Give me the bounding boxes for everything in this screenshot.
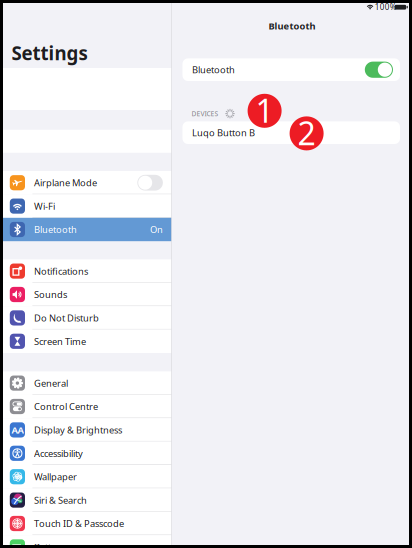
button[interactable]: Do Not Disturb: [0, 306, 172, 330]
button[interactable]: Bluetooth: [182, 58, 400, 81]
button[interactable]: Airplane Mode: [0, 171, 172, 194]
staticText: AA: [11, 424, 23, 436]
staticText: Wallpaper: [34, 470, 77, 483]
staticText: Control Centre: [34, 400, 98, 413]
staticText: Siri & Search: [34, 494, 87, 506]
staticText: Do Not Disturb: [34, 312, 99, 324]
button[interactable]: Luqo Button B: [182, 121, 400, 144]
staticText: General: [34, 377, 68, 389]
button[interactable]: Notifications: [0, 259, 172, 283]
staticText: Accessibility: [34, 447, 83, 459]
button[interactable]: Siri & Search: [0, 488, 172, 512]
staticText: Battery: [34, 541, 65, 548]
button[interactable]: Control Centre: [0, 395, 172, 418]
button[interactable]: Accessibility: [0, 442, 172, 465]
button[interactable]: Sounds: [0, 283, 172, 306]
staticText: Bluetooth: [268, 20, 315, 32]
staticText: 100%: [375, 1, 397, 12]
staticText: Bluetooth: [192, 63, 235, 76]
staticText: Luqo Button B: [192, 126, 255, 139]
staticText: Notifications: [34, 265, 88, 277]
staticText: Display & Brightness: [34, 424, 122, 436]
staticText: Sounds: [34, 288, 67, 301]
button[interactable]: AA: [0, 418, 172, 442]
button[interactable]: General: [0, 371, 172, 395]
button[interactable]: Touch ID & Passcode: [0, 512, 172, 535]
staticText: DEVICES: [191, 109, 218, 118]
staticText: 2: [298, 112, 316, 154]
button[interactable]: Bluetooth: [0, 218, 172, 241]
staticText: On: [150, 223, 163, 236]
button[interactable]: Wi-Fi: [0, 194, 172, 218]
button[interactable]: Battery: [0, 535, 172, 548]
staticText: Touch ID & Passcode: [34, 517, 124, 530]
staticText: 1: [256, 89, 274, 132]
staticText: Airplane Mode: [34, 176, 97, 189]
staticText: Bluetooth: [34, 223, 77, 236]
staticText: Wi-Fi: [34, 200, 55, 212]
staticText: Screen Time: [34, 335, 86, 347]
button[interactable]: Wallpaper: [0, 465, 172, 488]
staticText: Settings: [11, 41, 87, 65]
button[interactable]: Screen Time: [0, 330, 172, 353]
